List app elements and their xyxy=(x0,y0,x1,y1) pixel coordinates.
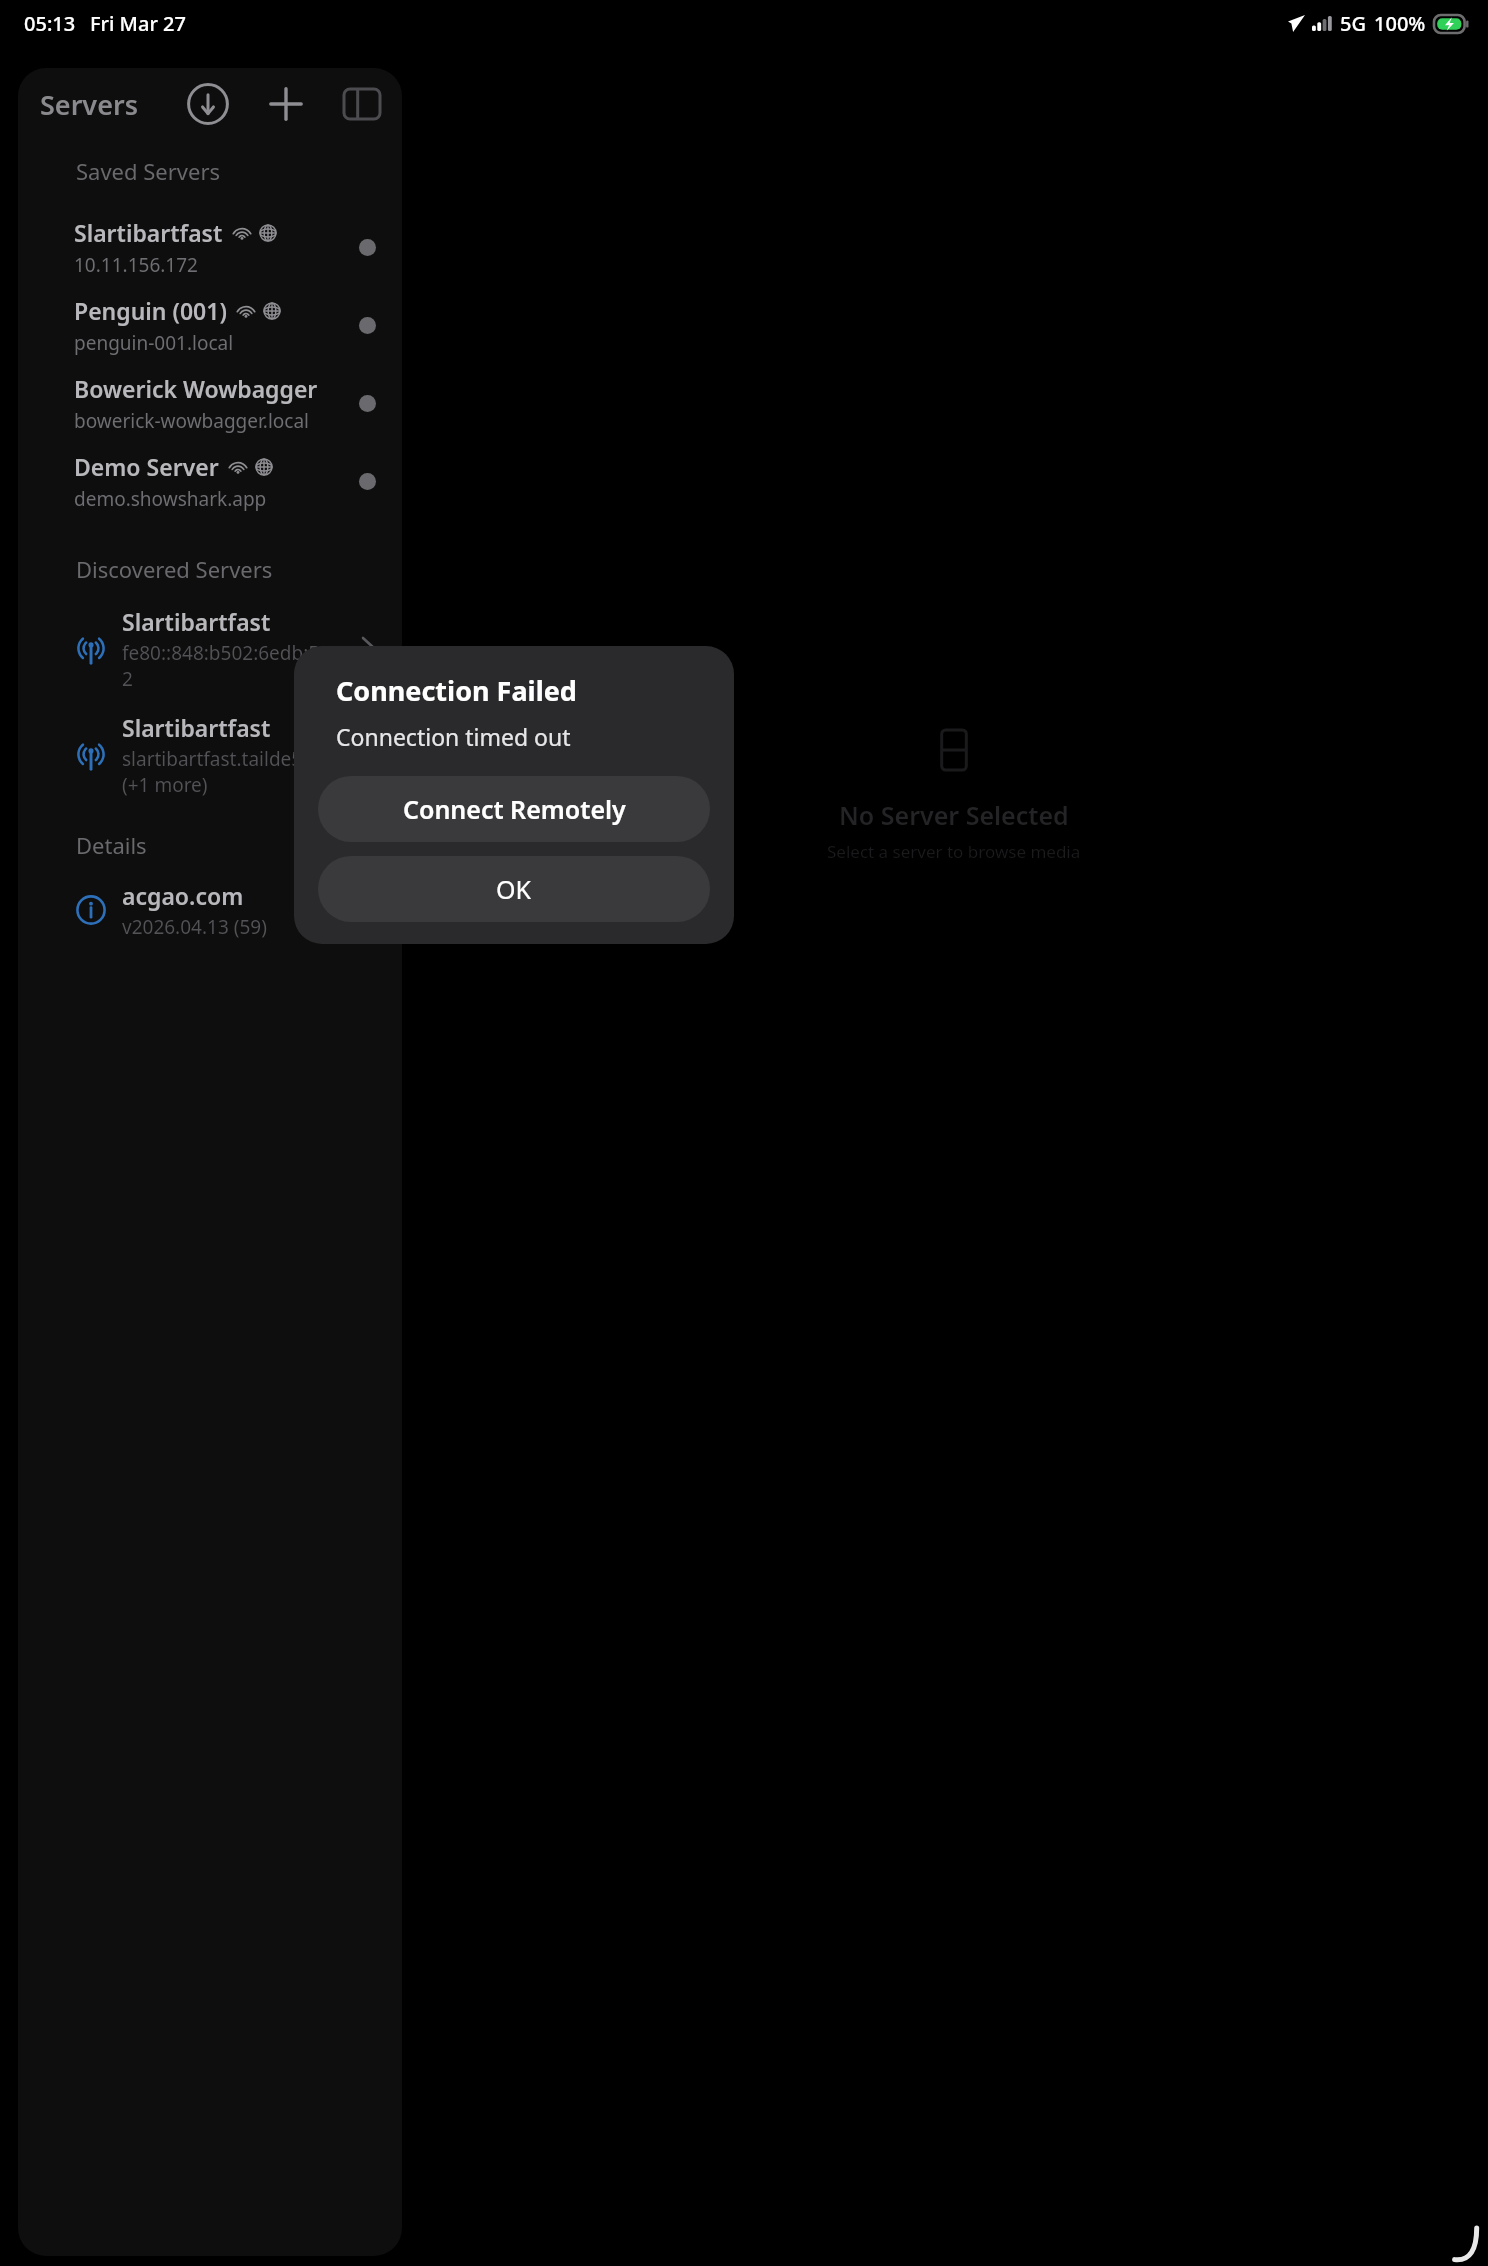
button[interactable]: Downloads xyxy=(182,78,234,130)
button[interactable]: Penguin (001) xyxy=(18,286,402,364)
staticText: 05:13 xyxy=(24,10,76,37)
staticText: OK xyxy=(496,872,532,906)
staticText: demo.showshark.app xyxy=(74,486,267,512)
staticText: Saved Servers xyxy=(76,156,221,186)
staticText: 5G xyxy=(1340,10,1366,37)
staticText: Bowerick Wowbagger xyxy=(74,373,318,404)
button[interactable]: Toggle sidebar xyxy=(336,78,388,130)
staticText: Slartibartfast xyxy=(74,217,223,248)
staticText: Penguin (001) xyxy=(74,295,227,326)
staticText: Fri Mar 27 xyxy=(90,10,186,37)
staticText: No Server Selected xyxy=(839,798,1069,832)
staticText: v2026.04.13 (59) xyxy=(122,914,267,940)
staticText: Connection Failed xyxy=(336,672,577,709)
staticText: Demo Server xyxy=(74,451,219,482)
staticText: 10.11.156.172 xyxy=(74,252,198,278)
button[interactable]: Slartibartfast xyxy=(18,606,402,692)
staticText: slartibartfast.tailde56a7.ts. xyxy=(122,746,361,772)
staticText: Discovered Servers xyxy=(76,554,273,584)
button[interactable]: Demo Server xyxy=(18,442,402,520)
button[interactable]: acgao.com xyxy=(18,880,402,940)
staticText: Details xyxy=(76,830,147,860)
staticText: Slartibartfast xyxy=(122,712,271,743)
staticText: Servers xyxy=(40,86,138,123)
staticText: Connection timed out xyxy=(336,721,571,752)
staticText: Connect Remotely xyxy=(403,792,626,826)
button[interactable]: Bowerick Wowbagger xyxy=(18,364,402,442)
button[interactable]: Add server xyxy=(260,78,312,130)
button[interactable]: Slartibartfast xyxy=(18,208,402,286)
staticText: Select a server to browse media xyxy=(827,840,1081,863)
button[interactable]: Slartibartfast xyxy=(18,712,402,798)
staticText: acgao.com xyxy=(122,880,244,911)
button[interactable]: OK xyxy=(318,856,710,922)
staticText: Slartibartfast xyxy=(122,606,271,637)
staticText: penguin-001.local xyxy=(74,330,234,356)
staticText: 2 xyxy=(122,666,133,692)
button[interactable]: Connect Remotely xyxy=(318,776,710,842)
staticText: bowerick-wowbagger.local xyxy=(74,408,309,434)
staticText: (+1 more) xyxy=(122,772,208,798)
staticText: fe80::848:b502:6edb:58a0%en xyxy=(122,640,362,666)
staticText: 100% xyxy=(1374,10,1426,37)
